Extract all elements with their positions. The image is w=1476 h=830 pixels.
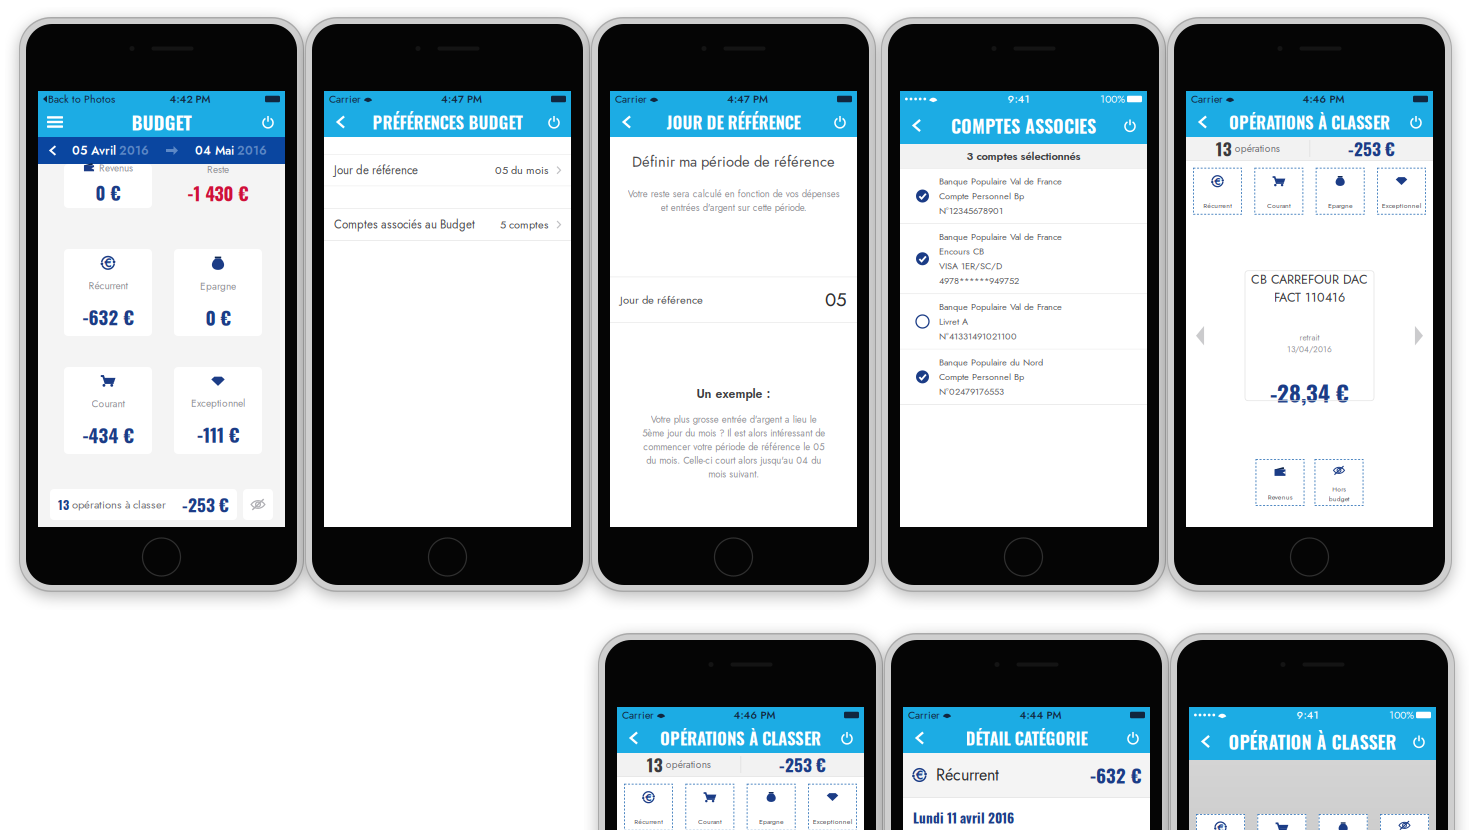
button[interactable]: Banque Populaire Val de France xyxy=(900,224,1147,293)
button[interactable]: Next operation xyxy=(1415,326,1423,345)
staticText: Banque Populaire du Nord xyxy=(939,355,1043,369)
staticText: Revenus xyxy=(1267,492,1292,502)
staticText: 4:47 PM xyxy=(727,91,768,107)
staticText: 13 xyxy=(647,752,663,777)
button[interactable]: Courant xyxy=(64,367,152,454)
staticText: Hors budget xyxy=(1328,484,1349,504)
button[interactable]: Banque Populaire Val de France xyxy=(900,294,1147,349)
staticText: Revenus xyxy=(99,161,133,175)
staticText: DÉTAIL CATÉGORIE xyxy=(965,726,1087,750)
button[interactable]: Courant xyxy=(685,784,734,830)
staticText: -632 € xyxy=(82,303,133,331)
staticText: OPÉRATIONS À CLASSER xyxy=(1229,110,1390,134)
staticText: € xyxy=(1217,819,1224,830)
button[interactable]: Comptes associés au Budget xyxy=(324,209,571,240)
staticText: 4:46 PM xyxy=(1302,91,1344,107)
button[interactable]: € xyxy=(1193,168,1242,215)
staticText: € xyxy=(1214,173,1221,189)
staticText: Courant xyxy=(698,817,722,827)
staticText: 4:44 PM xyxy=(1019,707,1061,723)
staticText: N°12345678901 xyxy=(939,204,1003,217)
button[interactable]: Back xyxy=(1193,728,1219,754)
staticText: -253 € xyxy=(1348,136,1395,161)
button[interactable]: € xyxy=(1196,814,1245,830)
staticText: 4:42 PM xyxy=(169,91,210,107)
button[interactable]: € xyxy=(64,249,152,336)
button[interactable]: Power xyxy=(827,109,853,135)
button[interactable]: Power xyxy=(255,109,281,135)
staticText: N°02479176553 xyxy=(939,385,1004,398)
staticText: N°41331491021100 xyxy=(939,329,1017,343)
staticText: 5 comptes xyxy=(500,217,548,232)
button[interactable]: Banque Populaire Val de France xyxy=(900,169,1147,223)
staticText: -253 € xyxy=(182,492,229,517)
staticText: 0 € xyxy=(95,179,120,206)
staticText: 9:41 xyxy=(1008,91,1030,107)
button[interactable]: Back xyxy=(614,109,640,135)
button[interactable]: Banque Populaire du Nord xyxy=(900,349,1147,404)
staticText: Banque Populaire Val de France xyxy=(939,300,1062,313)
staticText: -253 € xyxy=(779,752,826,777)
button[interactable]: Revenus xyxy=(1255,459,1304,506)
button[interactable]: Exceptionnel xyxy=(808,784,857,830)
staticText: VISA 1ER/SC/D xyxy=(939,259,1002,273)
button[interactable]: Power xyxy=(1117,112,1143,138)
button[interactable]: Courant xyxy=(1257,814,1306,830)
staticText: -111 € xyxy=(197,420,239,448)
button[interactable]: Courant xyxy=(1254,168,1303,215)
staticText: -28,34 € xyxy=(1270,375,1349,409)
button[interactable]: Previous period xyxy=(42,139,64,161)
staticText: -632 € xyxy=(1090,761,1141,789)
button[interactable]: Menu xyxy=(42,109,68,135)
staticText: Carrier xyxy=(622,707,654,723)
staticText: Epargne xyxy=(759,817,784,827)
staticText: Carrier xyxy=(329,91,361,107)
button[interactable]: Exceptionnel xyxy=(174,367,262,454)
staticText: 3 comptes sélectionnés xyxy=(966,148,1080,164)
button[interactable]: Back xyxy=(1190,109,1216,135)
button[interactable]: 13 xyxy=(50,489,237,520)
staticText: opérations à classer xyxy=(69,496,166,513)
button[interactable]: Epargne xyxy=(174,249,262,336)
staticText: 13 xyxy=(1216,136,1232,161)
staticText: FACT 110416 xyxy=(1274,288,1345,307)
staticText: Banque Populaire Val de France xyxy=(939,230,1062,243)
staticText: Récurrent xyxy=(634,817,663,827)
staticText: 2016 xyxy=(119,142,149,159)
button[interactable]: Hide amounts xyxy=(243,489,273,520)
staticText: Banque Populaire Val de France xyxy=(939,175,1062,188)
button[interactable]: Power xyxy=(1120,725,1146,751)
button[interactable]: Power xyxy=(1406,728,1432,754)
staticText: Carrier xyxy=(615,91,647,107)
staticText: 05 du mois xyxy=(495,162,548,178)
button[interactable]: Back xyxy=(907,725,933,751)
staticText: 100% xyxy=(1100,91,1125,107)
button[interactable]: € xyxy=(624,784,673,830)
staticText: Livret A xyxy=(939,315,968,328)
staticText: Carrier xyxy=(908,707,940,723)
button[interactable]: Back xyxy=(621,725,647,751)
staticText: Votre plus grosse entrée d'argent a lieu… xyxy=(642,413,825,481)
staticText: Exceptionnel xyxy=(1381,201,1421,211)
staticText: PRÉFÉRENCES BUDGET xyxy=(372,110,522,134)
button[interactable]: Back xyxy=(328,109,354,135)
button[interactable]: Previous operation xyxy=(1196,326,1204,345)
staticText: 05 Avril xyxy=(72,142,116,159)
button[interactable]: Epargne xyxy=(1319,814,1368,830)
button[interactable]: Hors budget xyxy=(1314,459,1363,506)
button[interactable]: Epargne xyxy=(747,784,796,830)
button[interactable]: Exceptionnel xyxy=(1377,168,1426,215)
button[interactable]: Back xyxy=(904,112,930,138)
staticText: Récurrent xyxy=(936,763,999,786)
staticText: € xyxy=(915,766,923,784)
button[interactable]: Power xyxy=(541,109,567,135)
button[interactable]: Power xyxy=(834,725,860,751)
staticText: Reste xyxy=(207,162,229,177)
staticText: Epargne xyxy=(200,279,236,293)
staticText: Votre reste sera calculé en fonction de … xyxy=(627,187,839,215)
button[interactable]: Epargne xyxy=(1316,168,1365,215)
button[interactable]: Power xyxy=(1403,109,1429,135)
staticText: 9:41 xyxy=(1297,707,1319,723)
button[interactable]: Hors budget xyxy=(1380,814,1429,830)
button[interactable]: Jour de référence xyxy=(324,155,571,186)
